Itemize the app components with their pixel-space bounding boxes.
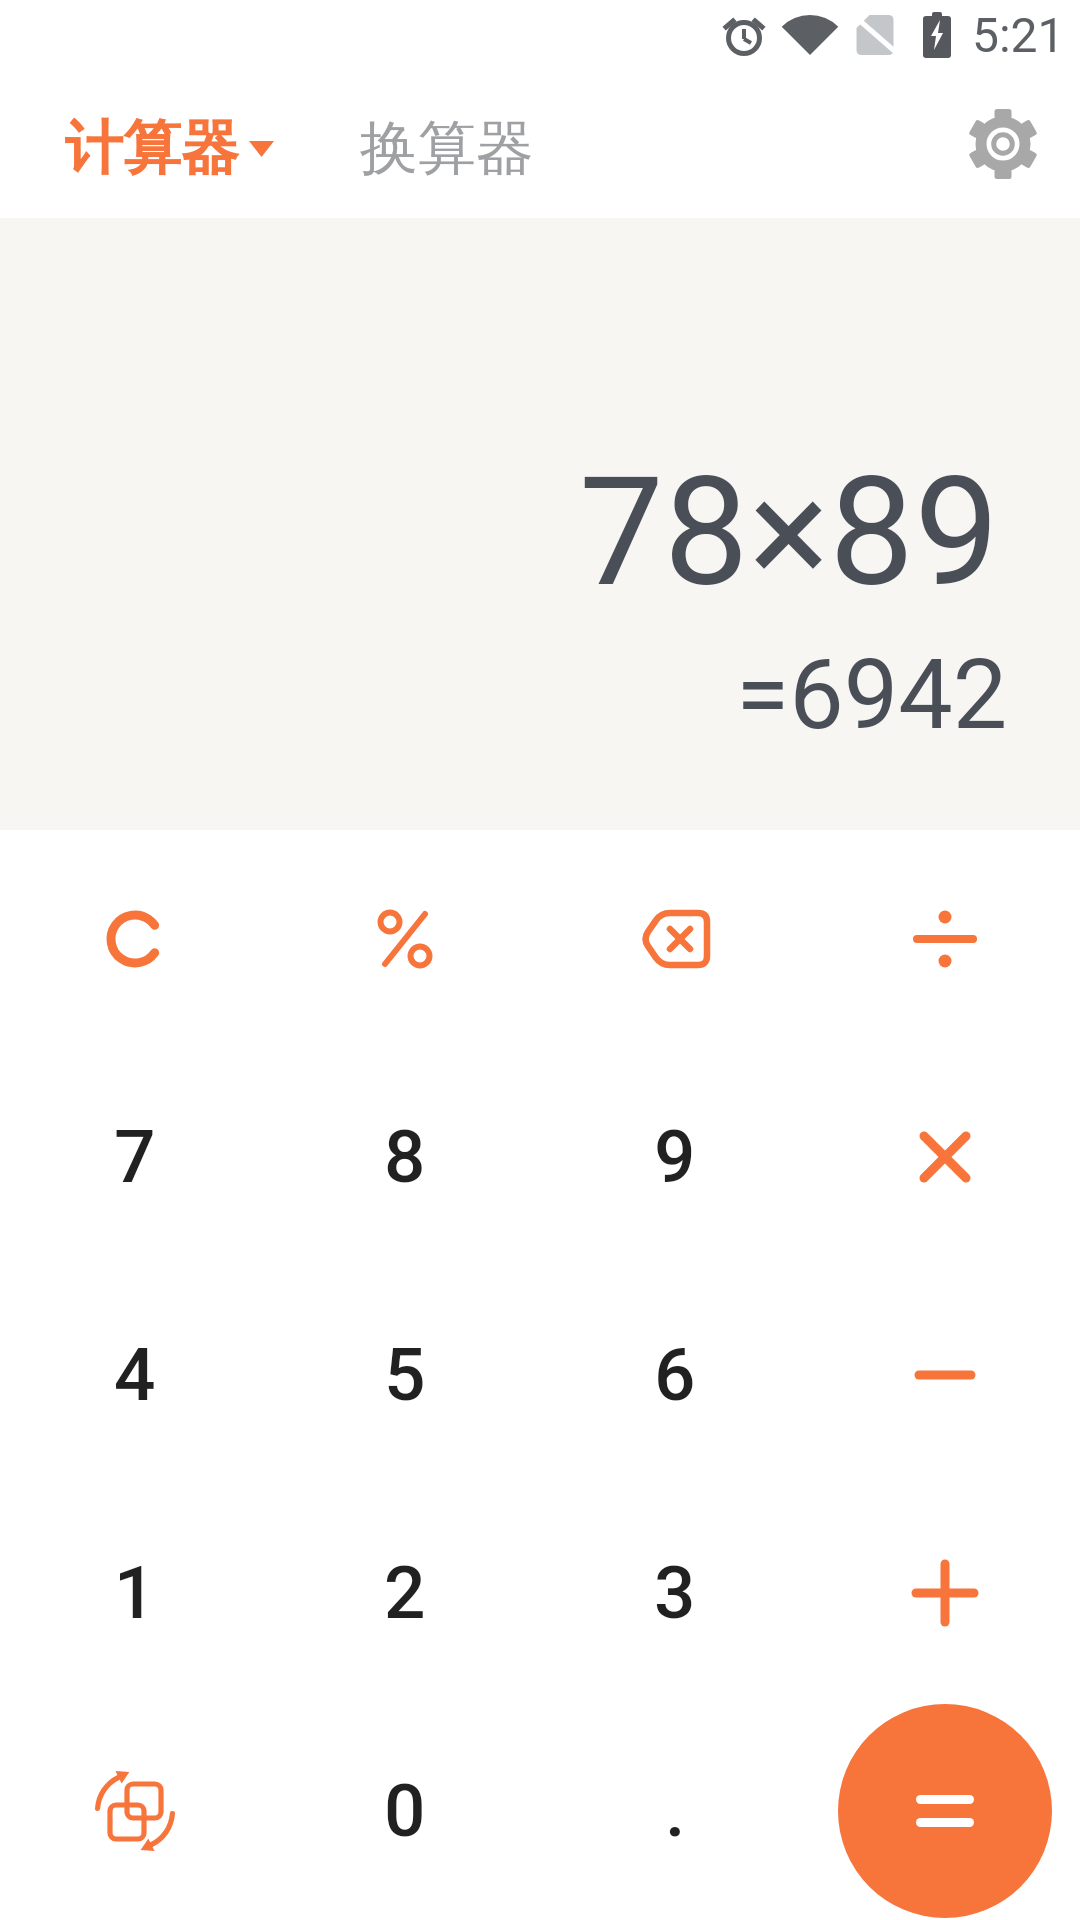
button[interactable]: . <box>540 1702 810 1920</box>
button[interactable]: 1 <box>0 1484 270 1702</box>
staticText: 8 <box>384 1114 426 1200</box>
staticText: 78×89 <box>579 444 1000 621</box>
button[interactable]: 2 <box>270 1484 540 1702</box>
button[interactable]: 6 <box>540 1266 810 1484</box>
staticText: 2 <box>384 1550 426 1636</box>
button[interactable] <box>0 830 270 1048</box>
staticText: 计算器 <box>65 112 239 185</box>
staticText: 7 <box>114 1114 156 1200</box>
button[interactable]: 计算器 <box>65 108 274 181</box>
button[interactable] <box>810 1266 1080 1484</box>
button[interactable] <box>810 1484 1080 1702</box>
button[interactable] <box>968 109 1038 179</box>
staticText: 0 <box>384 1768 426 1854</box>
staticText: =6942 <box>736 638 1008 752</box>
staticText: 5 <box>384 1332 426 1418</box>
button[interactable]: 5 <box>270 1266 540 1484</box>
button[interactable] <box>810 1048 1080 1266</box>
button[interactable]: 4 <box>0 1266 270 1484</box>
staticText: 9 <box>654 1114 696 1200</box>
button[interactable]: 9 <box>540 1048 810 1266</box>
button[interactable] <box>0 1702 270 1920</box>
button[interactable] <box>540 830 810 1048</box>
staticText: . <box>665 1768 686 1854</box>
staticText: 6 <box>654 1332 696 1418</box>
staticText: 3 <box>654 1550 696 1636</box>
button[interactable]: 换算器 <box>360 112 534 185</box>
button[interactable] <box>810 830 1080 1048</box>
button[interactable]: 8 <box>270 1048 540 1266</box>
staticText: 1 <box>114 1550 156 1636</box>
staticText: 5:21 <box>972 7 1065 63</box>
button[interactable]: 7 <box>0 1048 270 1266</box>
staticText: 4 <box>114 1332 156 1418</box>
button[interactable]: 3 <box>540 1484 810 1702</box>
button[interactable] <box>270 830 540 1048</box>
button[interactable]: 0 <box>270 1702 540 1920</box>
button[interactable] <box>838 1704 1052 1918</box>
